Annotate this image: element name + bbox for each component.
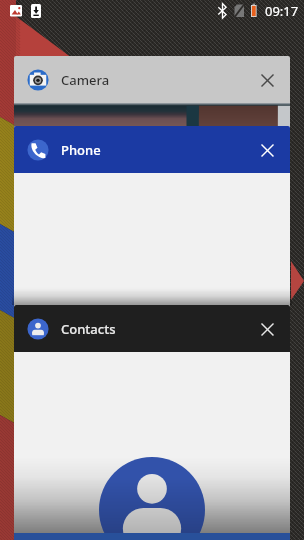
button[interactable]: Camera xyxy=(14,56,290,103)
staticText: Phone xyxy=(61,141,101,159)
button[interactable]: Close Camera xyxy=(248,61,286,99)
staticText: Camera xyxy=(61,71,110,89)
button[interactable]: Phone xyxy=(14,126,290,173)
button[interactable]: Contacts xyxy=(14,305,290,352)
staticText: 09:17 xyxy=(265,2,299,20)
button[interactable]: Close Contacts xyxy=(248,310,286,348)
staticText: Contacts xyxy=(61,320,116,338)
button[interactable]: Close Phone xyxy=(248,131,286,169)
